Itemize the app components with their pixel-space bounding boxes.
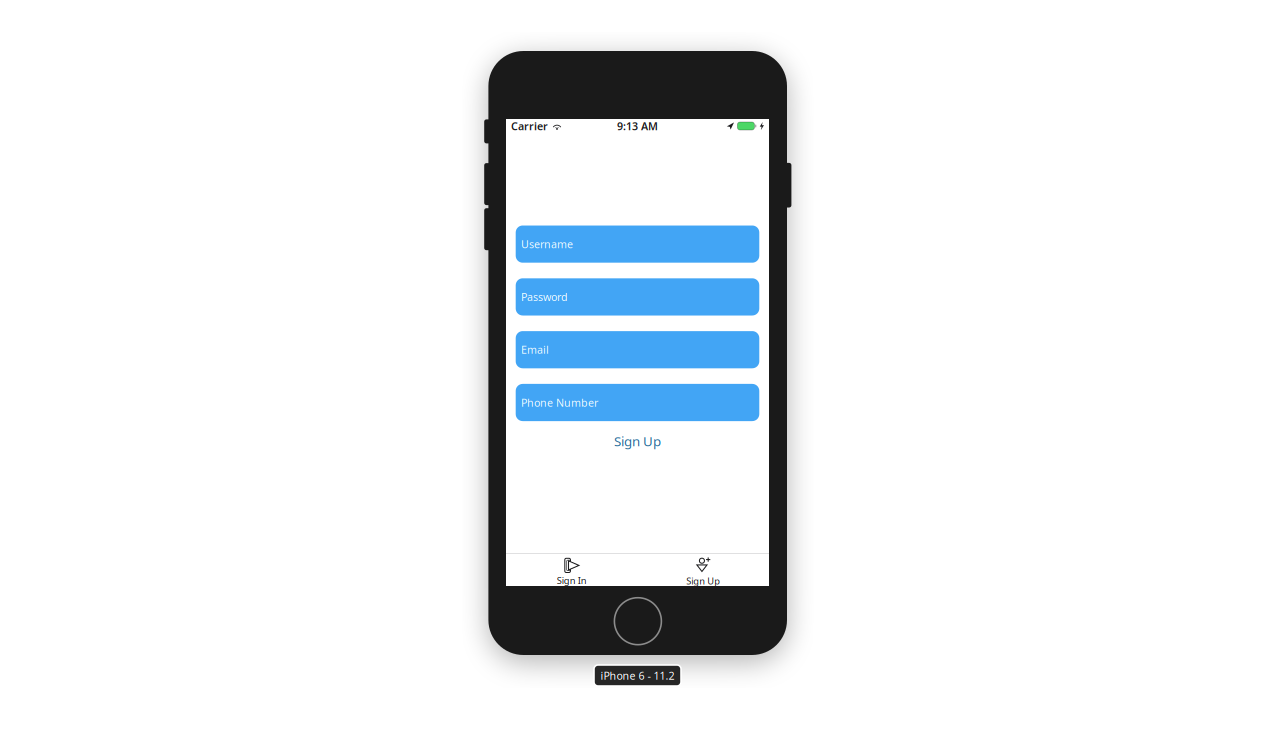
staticText: Sign Up	[686, 575, 720, 587]
staticText: 9:13 AM	[617, 119, 658, 133]
staticText: Phone Number	[521, 395, 598, 410]
button[interactable]: Password	[516, 278, 759, 315]
staticText: Carrier	[511, 119, 548, 133]
button[interactable]: Username	[516, 225, 759, 263]
button[interactable]: Sign In	[506, 554, 637, 586]
staticText: Email	[521, 343, 549, 357]
staticText: Sign In	[557, 574, 587, 587]
button[interactable]: Sign Up	[637, 554, 769, 586]
staticText: iPhone 6 - 11.2	[600, 668, 674, 683]
button[interactable]: Sign Up	[506, 432, 769, 450]
staticText: Password	[521, 290, 568, 304]
staticText: Sign Up	[614, 432, 661, 450]
staticText: Username	[521, 237, 573, 251]
button[interactable]: Email	[516, 331, 759, 368]
button[interactable]: Phone Number	[516, 384, 759, 421]
